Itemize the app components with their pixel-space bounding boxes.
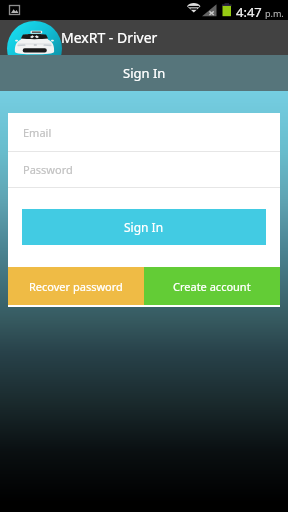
button[interactable]: Email bbox=[8, 113, 280, 151]
staticText: Create account bbox=[173, 279, 251, 294]
staticText: p.m. bbox=[265, 7, 284, 19]
button[interactable]: Password bbox=[8, 152, 280, 187]
staticText: Password bbox=[23, 162, 73, 177]
button[interactable]: Sign In bbox=[22, 209, 266, 245]
staticText: 4:47 bbox=[236, 3, 262, 21]
other: App logo bbox=[0, 20, 63, 55]
button[interactable]: Sign In bbox=[0, 55, 288, 91]
button[interactable]: Create account bbox=[144, 267, 280, 305]
staticText: Recover password bbox=[29, 279, 123, 294]
staticText: Email bbox=[23, 125, 52, 140]
staticText: Sign In bbox=[123, 64, 166, 82]
button[interactable]: Recover password bbox=[8, 267, 144, 305]
staticText: MexRT - Driver bbox=[61, 28, 158, 47]
staticText: Sign In bbox=[124, 219, 164, 235]
